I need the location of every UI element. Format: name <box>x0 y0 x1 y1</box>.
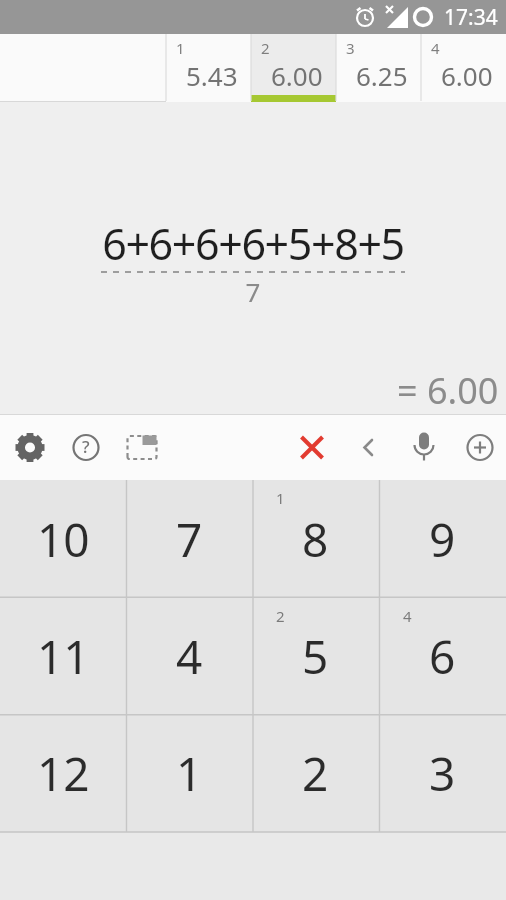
staticText: 1 <box>176 38 185 58</box>
button[interactable]: 11 <box>0 598 126 715</box>
button[interactable] <box>112 415 168 480</box>
staticText: 1 <box>176 742 203 805</box>
button[interactable]: 8 <box>252 480 379 598</box>
staticText: = 6.00 <box>397 366 499 415</box>
staticText: 3 <box>346 38 355 58</box>
button[interactable]: 12 <box>0 715 126 832</box>
button[interactable]: 3 <box>379 715 506 832</box>
staticText: 6.00 <box>271 58 323 93</box>
button[interactable]: 4 <box>126 598 252 715</box>
button[interactable]: 7 <box>126 480 252 598</box>
staticText: 17:34 <box>444 3 498 32</box>
button[interactable]: 10 <box>0 480 126 598</box>
staticText: 5 <box>302 625 329 688</box>
button[interactable] <box>394 415 450 480</box>
button[interactable]: 4 <box>421 34 506 102</box>
staticText: ? <box>82 435 90 458</box>
staticText: 6 <box>429 625 456 688</box>
staticText: 5.43 <box>186 58 238 93</box>
staticText: 9 <box>429 508 456 571</box>
staticText: 6+6+6+6+5+8+5 <box>0 214 506 273</box>
staticText: 12 <box>37 742 90 805</box>
staticText: 1 <box>276 488 285 508</box>
button[interactable]: 1 <box>126 715 252 832</box>
button[interactable] <box>450 415 506 480</box>
button[interactable]: 9 <box>379 480 506 598</box>
button[interactable]: 5 <box>252 598 379 715</box>
staticText: 11 <box>37 625 90 688</box>
button[interactable]: 3 <box>336 34 421 102</box>
button[interactable]: ? <box>56 415 112 480</box>
staticText: 3 <box>429 742 456 805</box>
staticText: 10 <box>37 508 90 571</box>
button[interactable]: 1 <box>166 34 251 102</box>
button[interactable]: 2 <box>252 715 379 832</box>
staticText: 8 <box>302 508 329 571</box>
button[interactable]: 6 <box>379 598 506 715</box>
staticText: 6.00 <box>441 58 493 93</box>
button[interactable] <box>0 415 56 480</box>
staticText: 4 <box>431 38 440 58</box>
staticText: 2 <box>276 606 285 626</box>
staticText: 4 <box>176 625 203 688</box>
staticText: 7 <box>176 508 203 571</box>
staticText: 4 <box>403 606 412 626</box>
staticText: 2 <box>302 742 329 805</box>
button[interactable] <box>338 415 394 480</box>
staticText: 2 <box>261 38 270 58</box>
button[interactable] <box>282 415 338 480</box>
staticText: 7 <box>0 274 506 309</box>
button[interactable]: 2 <box>251 34 336 102</box>
staticText: 6.25 <box>356 58 408 93</box>
